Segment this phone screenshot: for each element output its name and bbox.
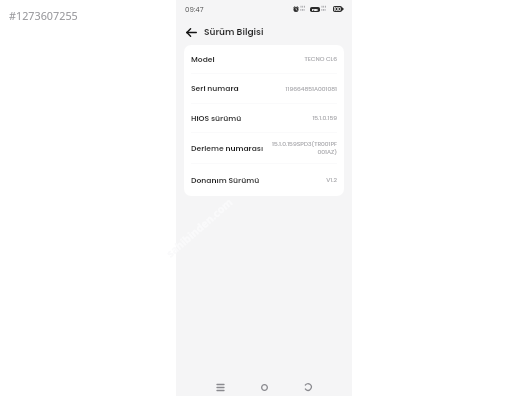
- staticText: 100: [334, 6, 341, 12]
- staticText: Seri numara: [191, 83, 239, 94]
- staticText: TECNO CL6: [304, 55, 337, 63]
- staticText: HiOS sürümü: [191, 113, 242, 124]
- button[interactable]: Donanım Sürümü: [184, 164, 344, 196]
- staticText: Donanım Sürümü: [191, 175, 260, 186]
- staticText: HD: [312, 7, 318, 12]
- staticText: sahibinden.com: [163, 195, 236, 260]
- staticText: 119664851A001081: [285, 85, 337, 93]
- staticText: 15.1.0.159SPD3(TR001PF 001AZ): [272, 140, 337, 156]
- button[interactable]: Seri numara: [184, 74, 344, 103]
- staticText: V1.2: [326, 176, 337, 184]
- staticText: Derleme numarası: [191, 143, 264, 154]
- staticText: Sürüm Bilgisi: [204, 26, 264, 39]
- button[interactable]: Back: [297, 376, 319, 396]
- button[interactable]: HiOS sürümü: [184, 104, 344, 132]
- button[interactable]: Home: [253, 376, 275, 396]
- staticText: #1273607255: [9, 8, 78, 23]
- staticText: 09:47: [185, 5, 204, 15]
- button[interactable]: Back: [181, 22, 201, 42]
- button[interactable]: Derleme numarası: [184, 133, 344, 163]
- button[interactable]: Model: [184, 45, 344, 73]
- button[interactable]: Recent apps: [209, 376, 231, 396]
- staticText: 15.1.0.159: [312, 114, 337, 122]
- staticText: Model: [191, 54, 215, 65]
